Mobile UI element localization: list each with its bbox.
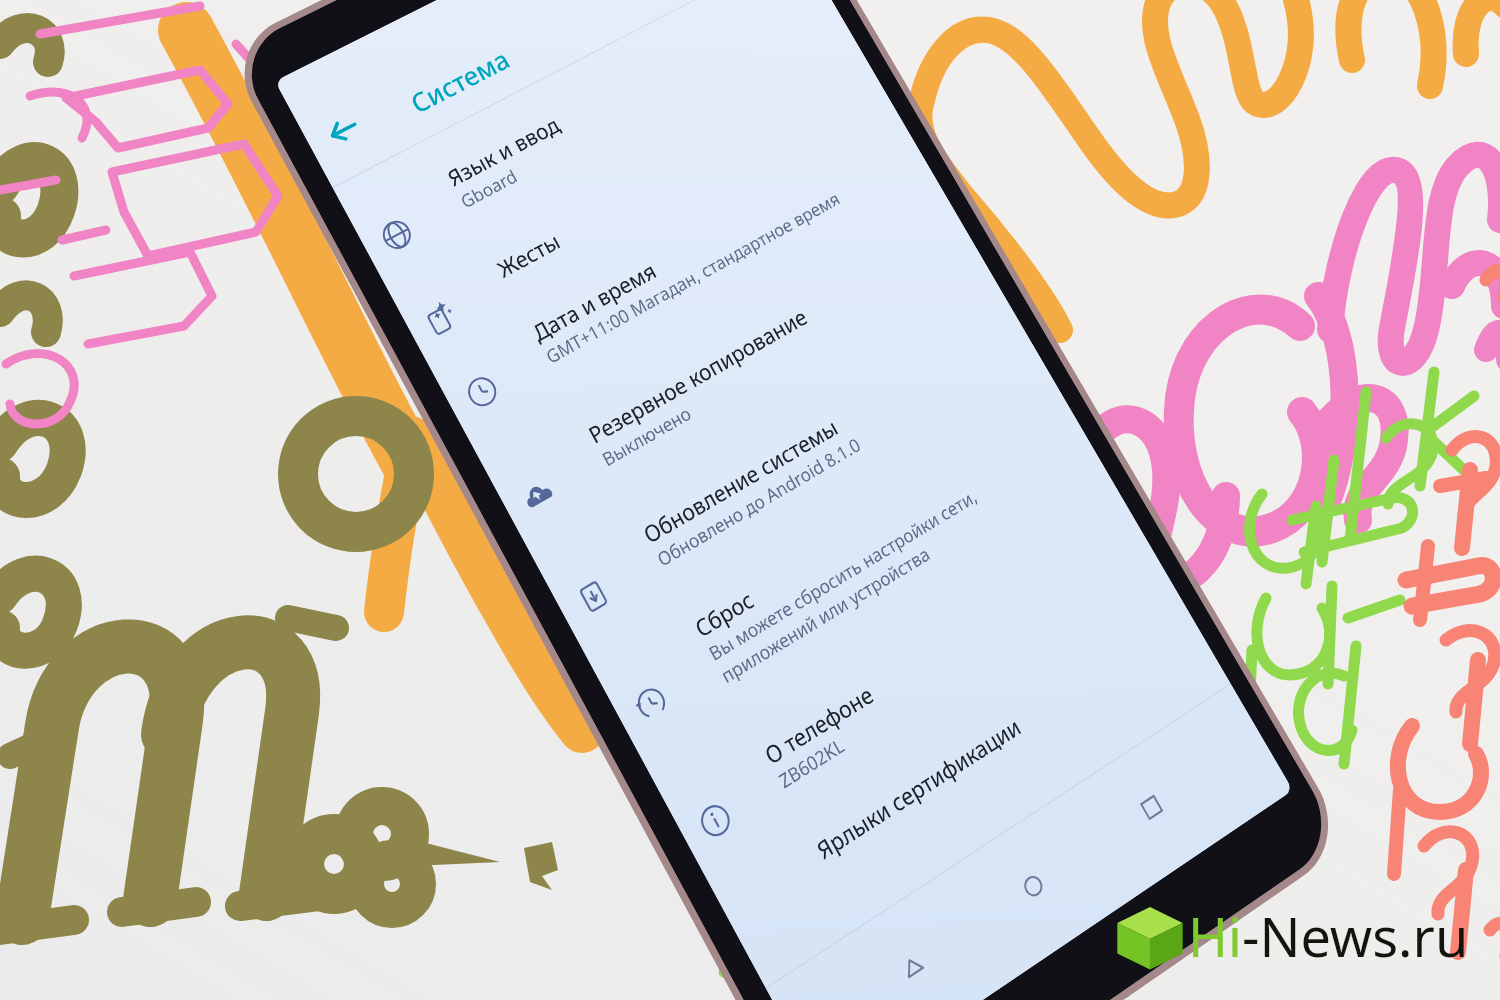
button[interactable]: Язык и ввод	[442, 0, 952, 270]
staticText: GMT+11:00 Магадан, стандартное время	[640, 158, 944, 350]
staticText: Резервное копирование	[683, 277, 912, 432]
staticText: Язык и ввод	[538, 82, 662, 169]
staticText: Hi	[1188, 899, 1242, 973]
button[interactable]: Recent apps	[1214, 744, 1304, 846]
button[interactable]: Сброс	[696, 364, 1220, 767]
button[interactable]: Жесты	[493, 20, 993, 346]
button[interactable]: Home	[1095, 826, 1187, 930]
button[interactable]: Back	[404, 71, 474, 142]
button[interactable]: Ярлыки сертификации	[820, 577, 1321, 956]
staticText: Выключено	[698, 381, 796, 456]
staticText: Ярлыки сертификации	[917, 695, 1132, 860]
staticText: Обновление системы	[739, 390, 944, 535]
staticText: Дата и время	[625, 231, 761, 328]
staticText: О телефоне	[863, 665, 983, 762]
staticText: Вы можете сбросить настройки сети, прило…	[808, 463, 1097, 677]
button[interactable]: О телефоне	[767, 486, 1279, 878]
button[interactable]: Резервное копирование	[586, 179, 1098, 540]
button[interactable]: Дата и время	[529, 81, 1040, 433]
staticText: Система	[499, 12, 612, 96]
staticText: Обновлено до Android 8.1.0	[755, 411, 968, 559]
staticText: ZB602KL	[879, 721, 955, 786]
staticText: Сброс	[792, 568, 862, 631]
staticText: -News.ru	[1242, 899, 1469, 973]
button[interactable]: Обновление системы	[643, 275, 1154, 645]
button[interactable]: Back	[974, 909, 1068, 1000]
